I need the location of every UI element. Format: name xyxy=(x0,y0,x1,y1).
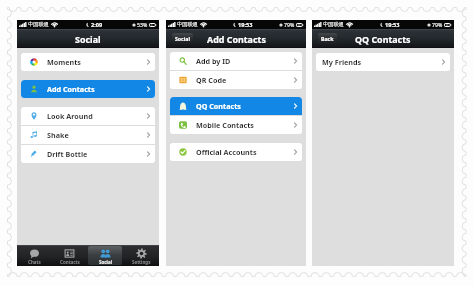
staticText: QQ Contacts xyxy=(355,33,411,45)
staticText: Contacts xyxy=(60,259,80,265)
button[interactable]: Social xyxy=(172,33,193,44)
button[interactable]: My Friends xyxy=(316,53,450,71)
staticText: Drift Bottle xyxy=(47,149,88,159)
button[interactable]: Official Accounts xyxy=(170,143,302,161)
button[interactable]: Contacts xyxy=(52,245,87,266)
staticText: Add Contacts xyxy=(47,84,95,94)
staticText: Look Around xyxy=(47,111,93,121)
staticText: Social xyxy=(99,259,112,265)
button[interactable]: Drift Bottle xyxy=(21,145,155,163)
staticText: Mobile Contacts xyxy=(196,120,254,130)
staticText: 53% xyxy=(137,21,148,28)
staticText: 79% xyxy=(284,21,295,28)
staticText: 中国联通 xyxy=(323,21,344,28)
staticText: 79% xyxy=(432,21,443,28)
button[interactable]: Back xyxy=(318,33,337,44)
staticText: 19:53 xyxy=(385,21,400,29)
staticText: QR Code xyxy=(196,75,227,85)
button[interactable]: Chats xyxy=(17,245,52,266)
button[interactable]: Add by ID xyxy=(170,52,302,70)
staticText: Social xyxy=(75,33,101,45)
button[interactable]: Look Around xyxy=(21,107,155,125)
button[interactable]: QR Code xyxy=(170,71,302,89)
staticText: Add Contacts xyxy=(207,33,266,45)
staticText: Social xyxy=(175,35,190,42)
staticText: Add by ID xyxy=(196,56,231,66)
staticText: Moments xyxy=(47,57,81,67)
staticText: Settings xyxy=(132,259,151,265)
staticText: 2:09 xyxy=(91,21,103,29)
staticText: QQ Contacts xyxy=(196,101,241,111)
staticText: Shake xyxy=(47,130,69,140)
staticText: Back xyxy=(321,35,334,42)
staticText: Official Accounts xyxy=(196,147,257,157)
button[interactable]: Shake xyxy=(21,126,155,144)
staticText: My Friends xyxy=(322,57,362,67)
button[interactable]: QQ Contacts xyxy=(170,97,302,115)
button[interactable]: Social xyxy=(87,245,123,266)
button[interactable]: Add Contacts xyxy=(21,80,155,98)
staticText: Chats xyxy=(28,259,41,265)
staticText: 19:53 xyxy=(238,21,253,29)
staticText: 中国联通 xyxy=(28,21,49,28)
staticText: 中国联通 xyxy=(177,21,198,28)
button[interactable]: Settings xyxy=(123,245,159,266)
button[interactable]: Moments xyxy=(21,53,155,71)
button[interactable]: Mobile Contacts xyxy=(170,116,302,134)
